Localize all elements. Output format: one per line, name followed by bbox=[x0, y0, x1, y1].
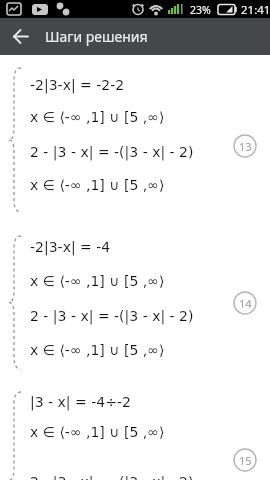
button[interactable]: 15 bbox=[233, 448, 257, 472]
staticText: 2 - |3 - x| = -(|3 - x| - 2) bbox=[30, 308, 194, 324]
button[interactable] bbox=[0, 18, 40, 55]
staticText: x ∈ ⟨-∞ ,1] ∪ [5 ,∞⟩ bbox=[30, 109, 165, 125]
staticText: -2|3-x| = -2-2 bbox=[30, 77, 125, 93]
staticText: x ∈ ⟨-∞ ,1] ∪ [5 ,∞⟩ bbox=[30, 273, 165, 289]
button[interactable]: 13 bbox=[233, 134, 257, 158]
button[interactable]: Шаги решения bbox=[0, 18, 270, 55]
staticText: 14 bbox=[239, 296, 252, 311]
staticText: x ∈ ⟨-∞ ,1] ∪ [5 ,∞⟩ bbox=[30, 424, 165, 440]
staticText: -2|3-x| = -4 bbox=[30, 239, 111, 255]
staticText: x ∈ ⟨-∞ ,1] ∪ [5 ,∞⟩ bbox=[30, 342, 165, 358]
staticText: 23% bbox=[190, 3, 211, 17]
staticText: 21:41 bbox=[241, 2, 270, 18]
staticText: |3 - x| = -4÷-2 bbox=[30, 394, 131, 410]
staticText: 2 - |3 - x| = -(|3 - x| - 2) bbox=[30, 144, 194, 160]
staticText: 15 bbox=[239, 453, 252, 468]
staticText: 13 bbox=[239, 139, 252, 154]
staticText: x ∈ ⟨-∞ ,1] ∪ [5 ,∞⟩ bbox=[30, 177, 165, 193]
staticText: Шаги решения bbox=[45, 27, 148, 46]
staticText: 2 - |3 - x| = -(|3 - x| - 2) bbox=[30, 474, 194, 480]
button[interactable]: 14 bbox=[233, 291, 257, 315]
